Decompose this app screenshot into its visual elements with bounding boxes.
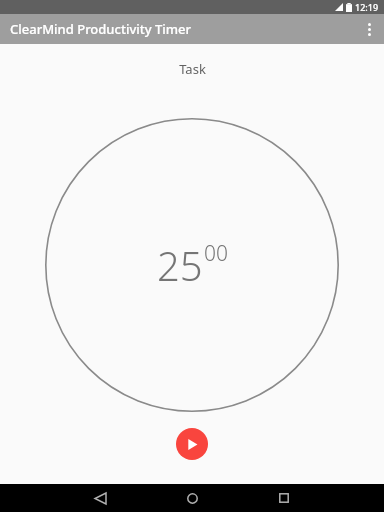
staticText: Task: [179, 60, 206, 78]
staticText: 25: [157, 238, 203, 292]
button[interactable]: 25: [45, 118, 339, 412]
button[interactable]: More options: [354, 14, 384, 44]
staticText: 00: [204, 239, 228, 268]
staticText: 12:19: [355, 1, 379, 13]
button[interactable]: Back: [86, 484, 114, 512]
button[interactable]: Home: [178, 484, 206, 512]
button[interactable]: Start timer: [176, 428, 208, 460]
staticText: ClearMind Productivity Timer: [10, 20, 192, 38]
button[interactable]: Recent apps: [270, 484, 298, 512]
